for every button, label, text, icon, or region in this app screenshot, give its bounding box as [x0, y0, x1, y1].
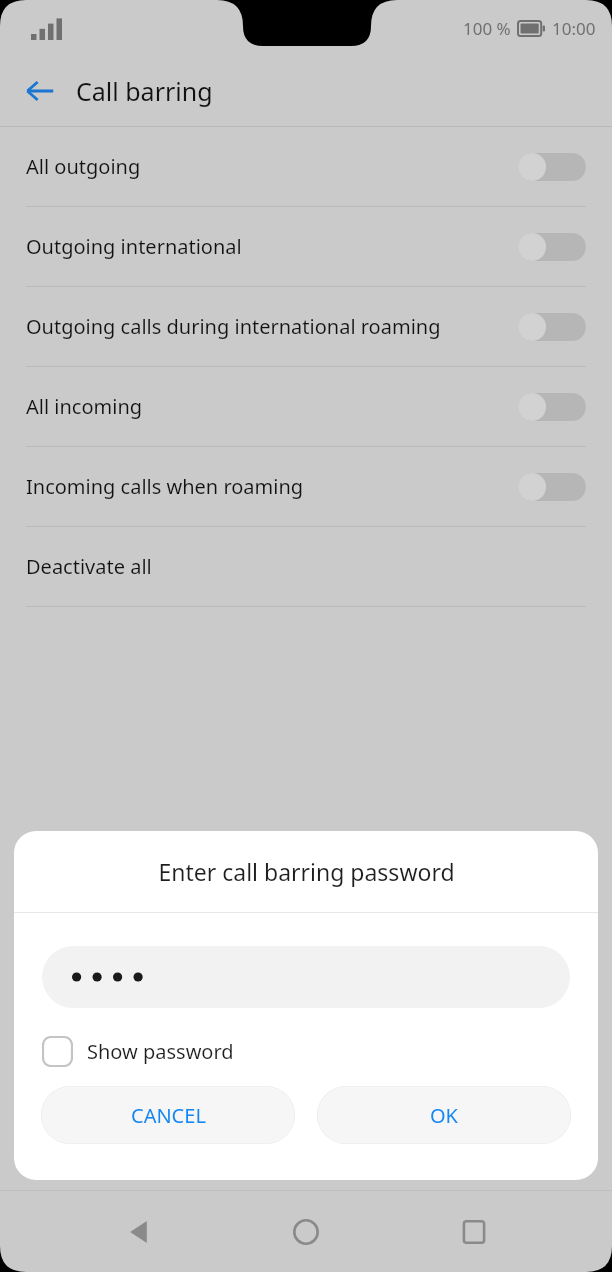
staticText: All outgoing [26, 153, 510, 180]
button[interactable]: Incoming calls when roaming [0, 447, 612, 526]
button[interactable]: Toggle [518, 230, 586, 264]
staticText: Call barring [76, 74, 213, 108]
button[interactable]: All incoming [0, 367, 612, 446]
staticText: All incoming [26, 393, 510, 420]
staticText: Incoming calls when roaming [26, 473, 510, 500]
staticText: Deactivate all [26, 553, 586, 580]
button[interactable]: Recent apps [445, 1203, 503, 1261]
staticText: Enter call barring password [158, 856, 455, 887]
button[interactable]: Toggle [518, 150, 586, 184]
button[interactable]: Toggle [518, 310, 586, 344]
button[interactable]: Outgoing calls during international roam… [0, 287, 612, 366]
staticText: OK [430, 1102, 458, 1129]
staticText: Outgoing international [26, 233, 510, 260]
staticText: 10:00 [552, 17, 596, 40]
button[interactable]: Home [277, 1203, 335, 1261]
button[interactable]: Password field [42, 946, 570, 1008]
button[interactable]: Toggle [518, 390, 586, 424]
staticText: Show password [87, 1038, 234, 1065]
button[interactable]: Toggle [518, 470, 586, 504]
staticText: 100 % [463, 17, 511, 40]
button[interactable]: All outgoing [0, 127, 612, 206]
staticText: CANCEL [131, 1102, 206, 1129]
button[interactable]: Show password [32, 1028, 234, 1074]
button[interactable]: OK [317, 1086, 571, 1144]
button[interactable]: Back [110, 1203, 168, 1261]
button[interactable]: Deactivate all [0, 527, 612, 606]
button[interactable]: Back [14, 65, 66, 117]
button[interactable]: Outgoing international [0, 207, 612, 286]
staticText: Outgoing calls during international roam… [26, 313, 452, 340]
button[interactable]: CANCEL [41, 1086, 295, 1144]
